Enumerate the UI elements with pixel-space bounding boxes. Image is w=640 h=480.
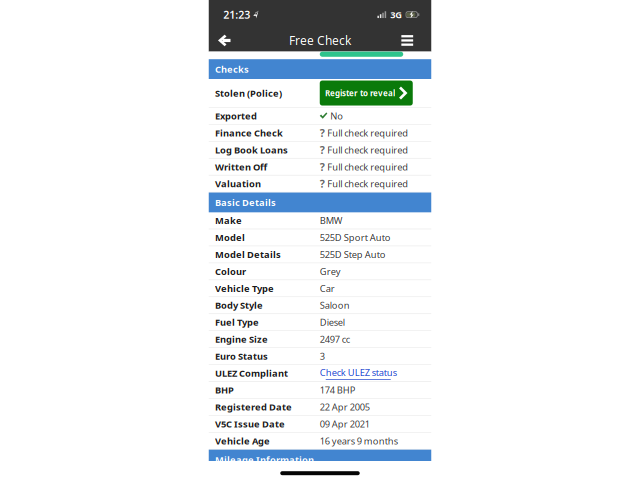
staticText: Vehicle Age	[215, 435, 270, 447]
staticText: Engine Size	[215, 333, 268, 345]
staticText: ?	[320, 126, 325, 140]
staticText: Written Off	[215, 161, 267, 173]
staticText: BMW	[320, 214, 343, 227]
staticText: 2497 cc	[320, 333, 350, 345]
staticText: Model Details	[215, 248, 281, 261]
staticText: Registered Date	[215, 401, 292, 413]
staticText: 21:23	[223, 8, 250, 22]
staticText: Model	[215, 231, 245, 244]
staticText: 09 Apr 2021	[320, 418, 370, 430]
staticText: Body Style	[215, 299, 263, 311]
staticText: Grey	[320, 265, 341, 277]
staticText: 525D Step Auto	[320, 248, 386, 261]
staticText: Colour	[215, 265, 246, 277]
button[interactable]: Register to reveal	[320, 80, 413, 105]
staticText: Check ULEZ status	[320, 366, 397, 379]
staticText: 3	[320, 350, 325, 362]
staticText: Checks	[215, 63, 249, 75]
staticText: ?	[320, 160, 325, 174]
staticText: Diesel	[320, 316, 345, 328]
staticText: Euro Status	[215, 350, 268, 362]
button[interactable]: Back	[211, 29, 237, 52]
staticText: Full check required	[327, 161, 408, 173]
staticText: Vehicle Type	[215, 282, 274, 294]
staticText: Stolen (Police)	[215, 87, 282, 99]
staticText: 16 years 9 months	[320, 435, 398, 447]
staticText: Mileage Information	[215, 453, 314, 466]
staticText: Full check required	[327, 177, 408, 190]
staticText: No	[330, 110, 343, 122]
staticText: 22 Apr 2005	[320, 401, 370, 413]
staticText: ?	[320, 177, 325, 191]
staticText: Log Book Loans	[215, 144, 288, 156]
staticText: ULEZ Compliant	[215, 367, 288, 379]
staticText: ?	[320, 143, 325, 157]
staticText: Make	[215, 214, 242, 227]
staticText: 525D Sport Auto	[320, 231, 391, 244]
staticText: Register to reveal	[325, 88, 395, 98]
staticText: Exported	[215, 110, 257, 122]
button[interactable]: Menu	[394, 29, 420, 52]
staticText: 174 BHP	[320, 384, 356, 396]
staticText: 3G	[390, 8, 402, 21]
staticText: BHP	[215, 384, 234, 396]
staticText: Full check required	[327, 144, 408, 156]
staticText: Basic Details	[215, 196, 276, 209]
button[interactable]: Check ULEZ status	[320, 366, 397, 380]
staticText: Saloon	[320, 299, 350, 311]
staticText: Valuation	[215, 177, 261, 190]
staticText: Full check required	[327, 127, 408, 139]
staticText: Finance Check	[215, 127, 283, 139]
staticText: Car	[320, 282, 335, 294]
staticText: V5C Issue Date	[215, 418, 285, 430]
staticText: Free Check	[289, 32, 351, 48]
staticText: Fuel Type	[215, 316, 259, 328]
